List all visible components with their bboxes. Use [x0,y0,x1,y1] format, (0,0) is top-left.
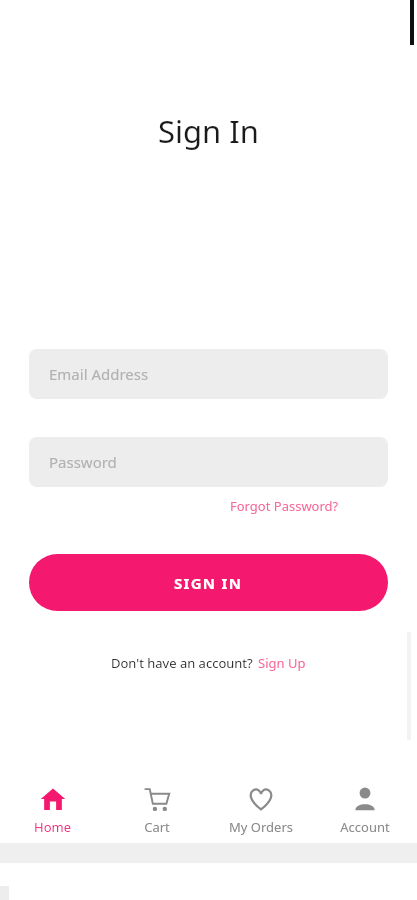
staticText: Don't have an account? [111,654,257,672]
staticText: My Orders [229,818,293,836]
button[interactable]: Sign Up [257,651,307,675]
button[interactable]: Email Address [29,349,388,399]
staticText: Sign In [158,110,259,152]
staticText: Email Address [49,364,149,384]
button[interactable]: Home [0,778,105,840]
staticText: Cart [144,818,170,836]
staticText: SIGN IN [174,573,243,593]
staticText: Forgot Password? [230,497,339,515]
button[interactable]: Forgot Password? [226,494,343,518]
staticText: Password [49,452,117,472]
staticText: Account [340,818,390,836]
button[interactable]: Cart [105,778,209,840]
button[interactable]: SIGN IN [29,554,388,611]
button[interactable]: My Orders [209,778,313,840]
button[interactable]: Account [313,778,417,840]
staticText: Home [34,818,71,836]
button[interactable]: Password [29,437,388,487]
staticText: Sign Up [258,654,306,672]
